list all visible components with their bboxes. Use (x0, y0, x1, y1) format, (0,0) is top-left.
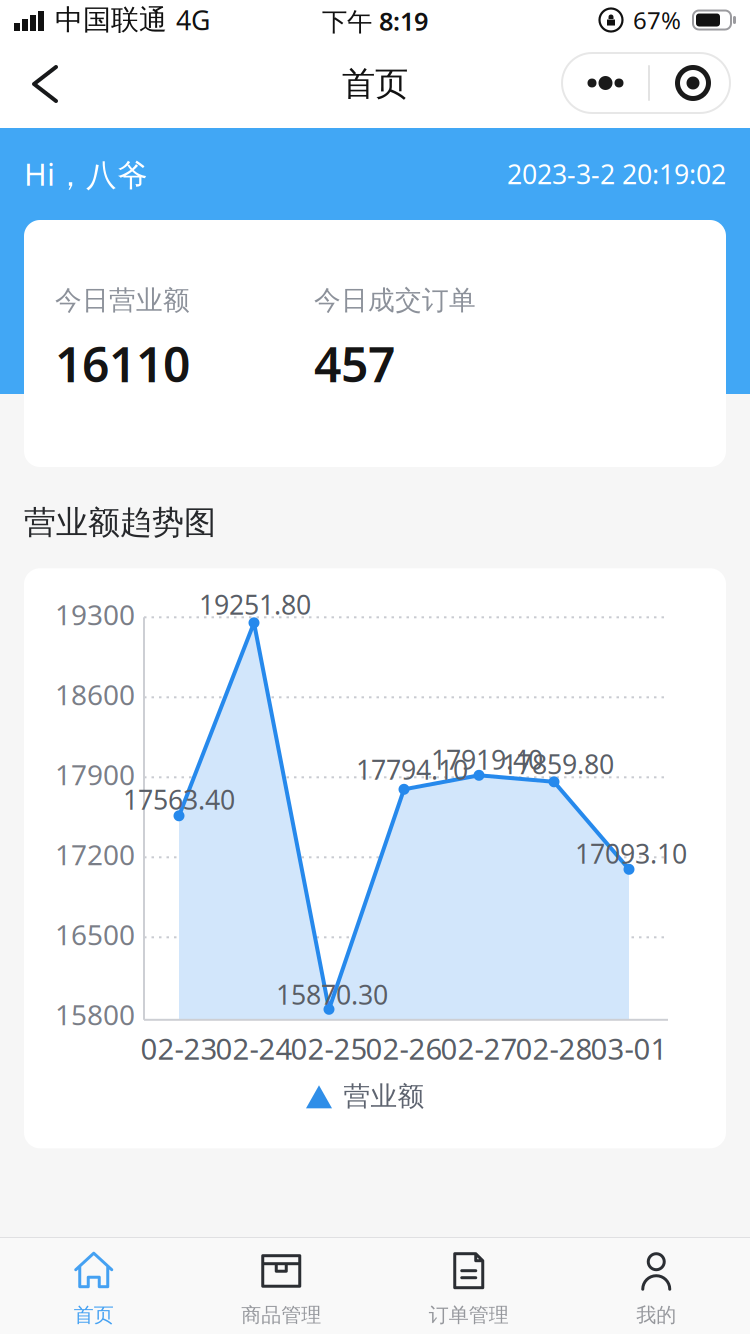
staticText: 457 (314, 332, 395, 395)
staticText: 02-27 (440, 1029, 517, 1068)
staticText: 订单管理 (429, 1303, 509, 1327)
staticText: 02-28 (515, 1029, 592, 1068)
staticText: 15870.30 (276, 977, 388, 1012)
button[interactable]: 我的 (562, 1245, 750, 1327)
staticText: 02-26 (365, 1029, 442, 1068)
staticText: 首页 (342, 63, 408, 104)
staticText: 下午 8:19 (322, 4, 428, 38)
staticText: 16110 (55, 332, 190, 395)
staticText: 02-24 (215, 1029, 292, 1068)
staticText: 16500 (55, 916, 135, 953)
staticText: 17200 (55, 836, 135, 873)
staticText: 我的 (636, 1303, 676, 1327)
button[interactable]: 商品管理 (187, 1245, 375, 1327)
staticText: 02-25 (290, 1029, 367, 1068)
staticText: 营业额趋势图 (24, 503, 216, 542)
staticText: 15800 (55, 996, 135, 1033)
staticText: 中国联通 (55, 3, 167, 37)
button[interactable]: 首页 (0, 1245, 187, 1327)
button[interactable] (562, 53, 730, 113)
staticText: 17563.40 (123, 782, 235, 817)
staticText: 今日成交订单 (314, 284, 476, 317)
staticText: 02-23 (140, 1029, 217, 1068)
staticText: 17859.80 (502, 746, 614, 781)
button[interactable] (25, 64, 65, 104)
staticText: 17900 (55, 756, 135, 793)
staticText: 17919.40 (431, 742, 543, 777)
staticText: 2023-3-2 20:19:02 (507, 156, 726, 192)
staticText: 4G (176, 2, 210, 38)
staticText: 首页 (74, 1303, 114, 1327)
staticText: 营业额 (343, 1080, 424, 1113)
staticText: 18600 (55, 676, 135, 713)
staticText: 17093.10 (575, 836, 687, 871)
staticText: 03-01 (590, 1029, 667, 1068)
staticText: 今日营业额 (55, 284, 190, 317)
staticText: 67% (633, 4, 681, 36)
staticText: Hi，八爷 (24, 154, 148, 194)
staticText: 19300 (55, 596, 135, 633)
staticText: 19251.80 (199, 587, 311, 622)
staticText: 17794.10 (356, 752, 468, 787)
button[interactable]: 订单管理 (375, 1245, 562, 1327)
staticText: 商品管理 (241, 1303, 321, 1327)
